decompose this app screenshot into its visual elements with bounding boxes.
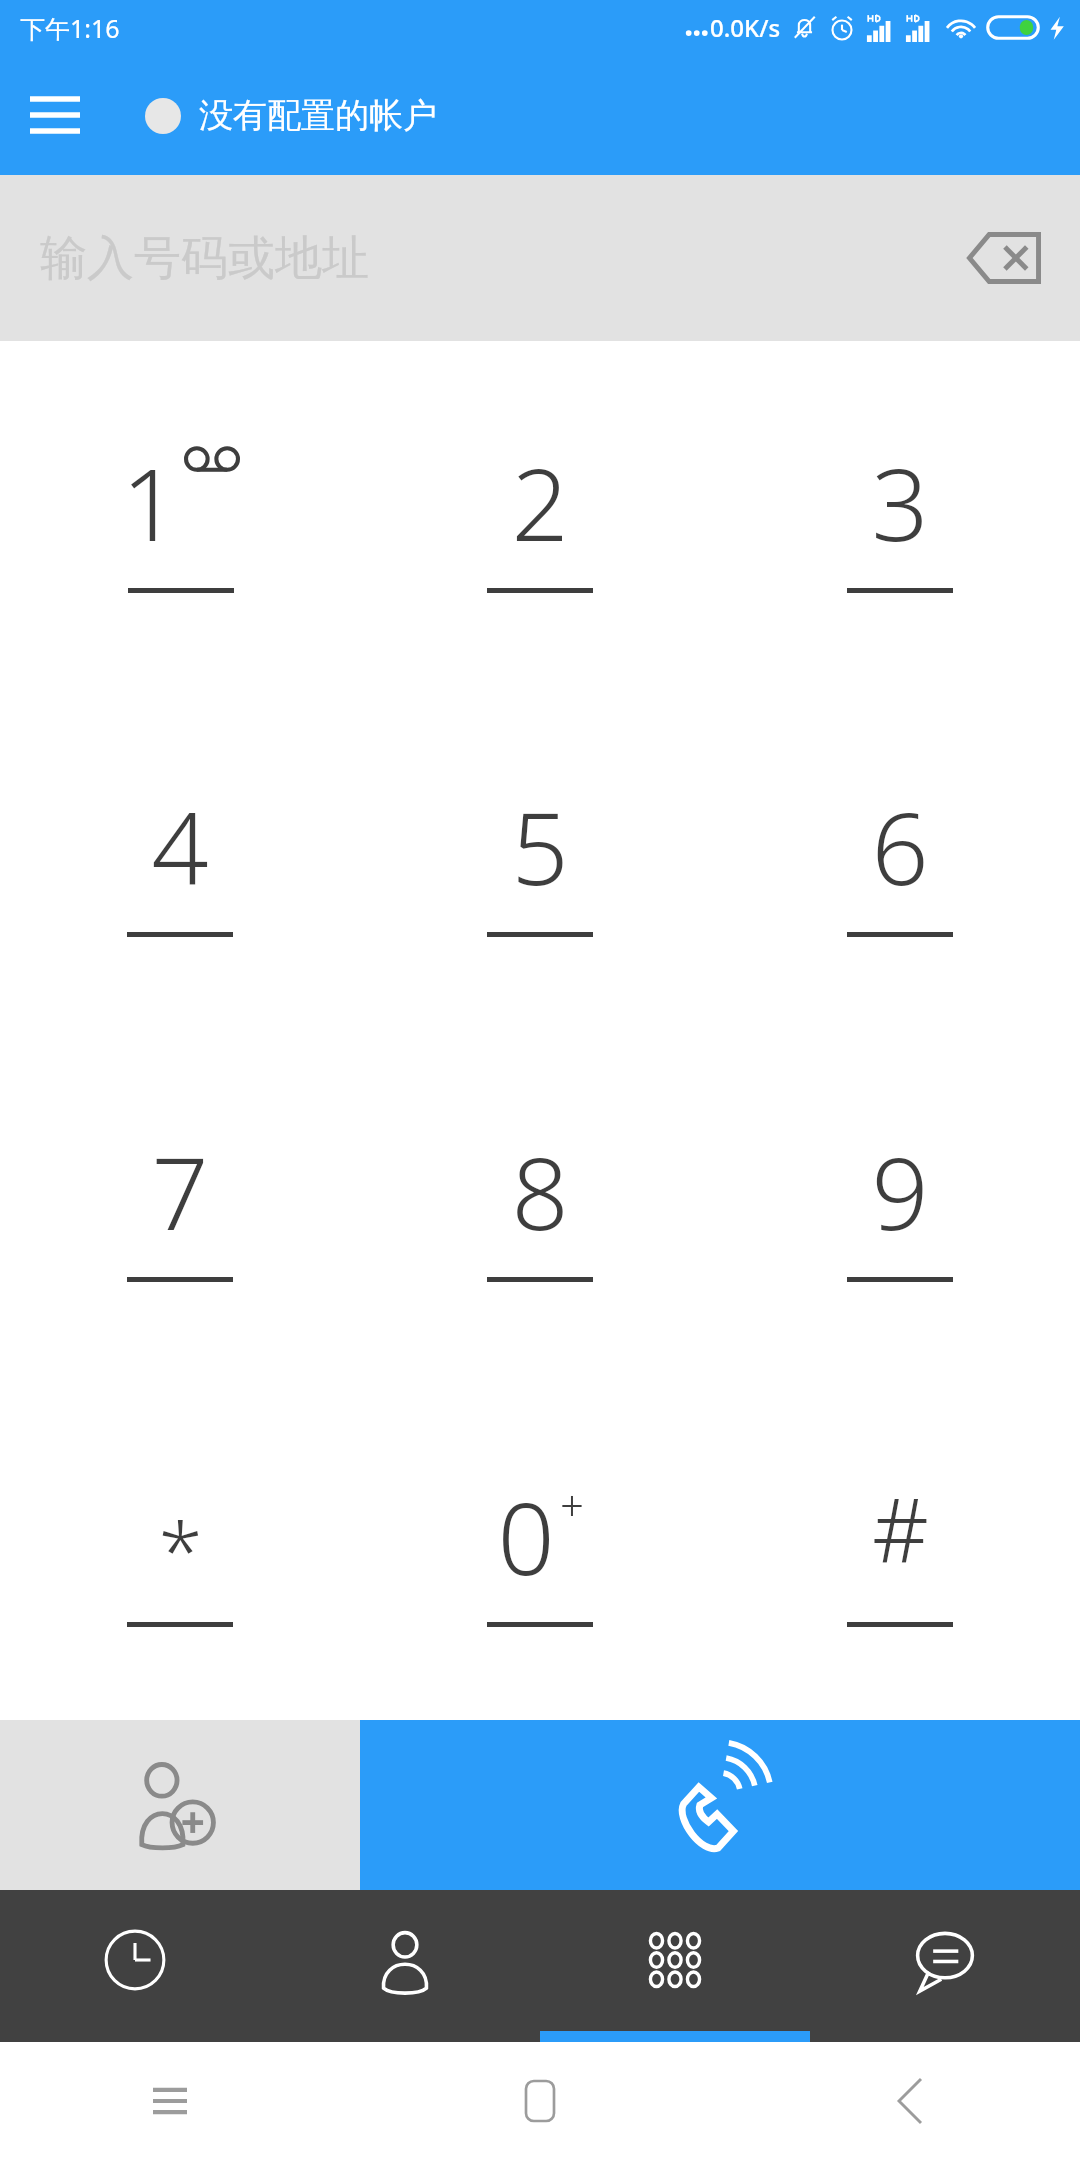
button[interactable]: 9	[720, 1030, 1080, 1375]
button[interactable]: Menu	[20, 80, 90, 150]
button[interactable]: Add contact	[0, 1720, 360, 1890]
staticText: 没有配置的帐户	[199, 94, 437, 137]
button[interactable]: Back	[868, 2059, 952, 2143]
button[interactable]: 2	[360, 341, 720, 685]
staticText: #	[872, 1468, 929, 1588]
button[interactable]: Backspace	[952, 206, 1056, 310]
button[interactable]: 0	[360, 1375, 720, 1720]
staticText: 4	[151, 778, 209, 898]
button[interactable]: Messages	[810, 1890, 1080, 2042]
button[interactable]: *	[0, 1375, 360, 1720]
button[interactable]: Call	[360, 1720, 1080, 1890]
button[interactable]: 7	[0, 1030, 360, 1375]
button[interactable]: Contacts	[270, 1890, 540, 2042]
button[interactable]: 3	[720, 341, 1080, 685]
button[interactable]: 4	[0, 685, 360, 1030]
staticText: 0	[497, 1468, 555, 1588]
button[interactable]: 6	[720, 685, 1080, 1030]
staticText: 3	[871, 434, 929, 554]
button[interactable]: #	[720, 1375, 1080, 1720]
staticText: *	[158, 1494, 203, 1603]
staticText: 下午1:16	[20, 11, 120, 45]
button[interactable]: Home	[498, 2059, 582, 2143]
staticText: 输入号码或地址	[40, 229, 369, 288]
button[interactable]: Call log	[0, 1890, 270, 2042]
staticText: 1	[121, 434, 179, 554]
button[interactable]: 没有配置的帐户	[145, 94, 437, 137]
button[interactable]: Dial pad	[540, 1890, 810, 2042]
staticText: 7	[151, 1123, 209, 1243]
button[interactable]: 8	[360, 1030, 720, 1375]
staticText: 0.0K/s	[710, 11, 781, 44]
staticText: 9	[871, 1123, 929, 1243]
staticText: +	[560, 1476, 584, 1533]
staticText: 6	[871, 778, 929, 898]
staticText: 2	[511, 434, 569, 554]
button[interactable]: Recents	[128, 2059, 212, 2143]
staticText: 5	[511, 778, 569, 898]
button[interactable]: 5	[360, 685, 720, 1030]
staticText: 8	[511, 1123, 569, 1243]
button[interactable]: 1	[0, 341, 360, 685]
